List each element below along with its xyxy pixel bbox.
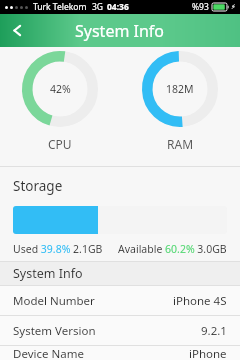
- staticText: 182M: [166, 82, 194, 96]
- staticText: 3G: [92, 1, 104, 13]
- staticText: 04:36: [107, 1, 129, 13]
- staticText: Device Name: [13, 346, 84, 360]
- button[interactable]: System Version: [0, 316, 240, 345]
- staticText: Used 39.8% 2.1GB: [13, 242, 103, 256]
- button[interactable]: Model Number: [0, 286, 240, 315]
- staticText: RAM: [167, 136, 194, 152]
- staticText: Turk Telekom: [33, 1, 87, 13]
- staticText: iPhone 4S: [173, 293, 227, 309]
- staticText: System Info: [75, 20, 165, 42]
- button[interactable]: Back: [0, 14, 34, 47]
- staticText: System Version: [13, 323, 96, 339]
- staticText: System Info: [13, 265, 83, 282]
- staticText: 9.2.1: [201, 323, 227, 339]
- staticText: Storage: [13, 177, 63, 195]
- staticText: CPU: [48, 136, 72, 152]
- staticText: Model Number: [13, 293, 95, 309]
- staticText: ⚡: [231, 3, 236, 11]
- button[interactable]: Device Name: [0, 346, 240, 360]
- staticText: %93: [192, 1, 209, 13]
- staticText: Available 60.2% 3.0GB: [118, 242, 227, 256]
- staticText: iPhone: [189, 346, 227, 360]
- staticText: 42%: [50, 82, 71, 96]
